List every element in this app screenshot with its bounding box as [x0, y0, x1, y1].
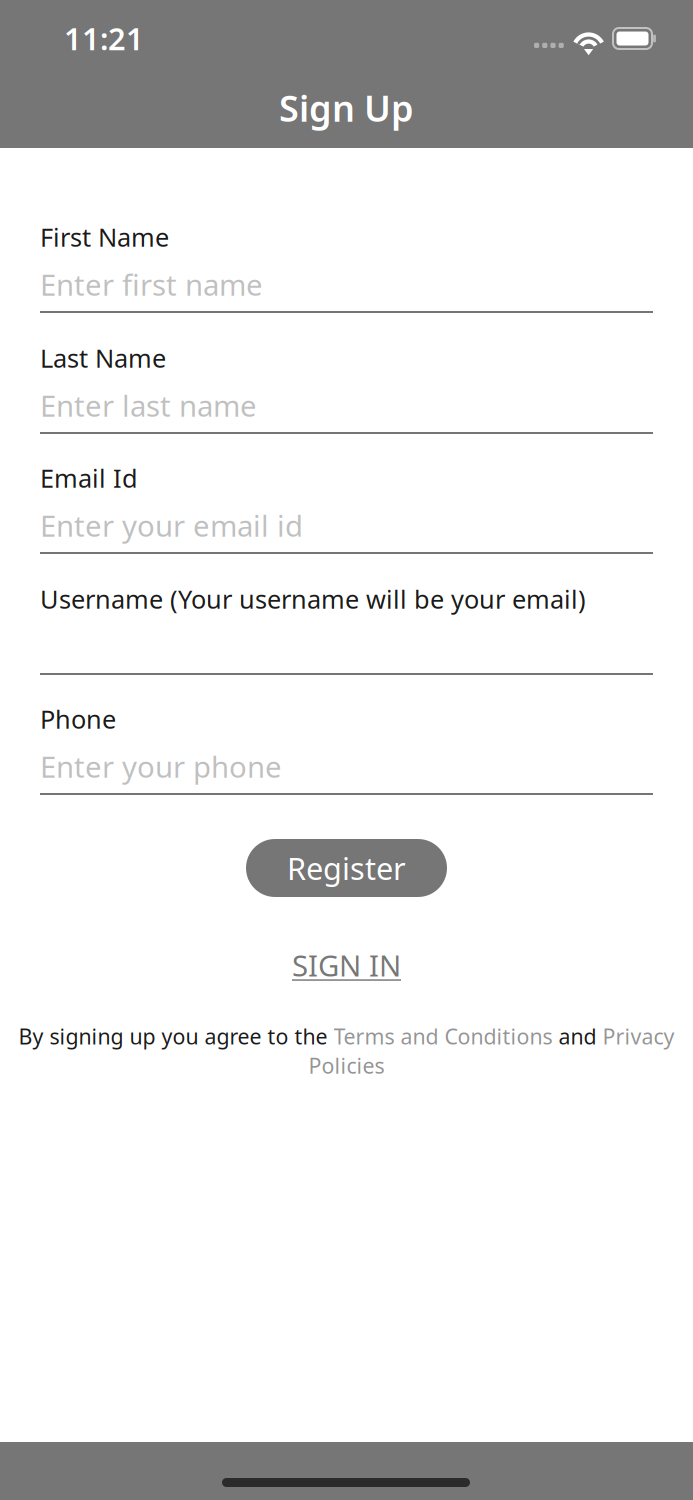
staticText: SIGN IN	[292, 945, 401, 984]
staticText: Enter first name	[40, 265, 263, 304]
staticText: By signing up you agree to the	[18, 1022, 333, 1050]
button[interactable]: Username (Your username will be your ema…	[40, 582, 653, 682]
button[interactable]: Email Id	[40, 461, 653, 561]
staticText: Last Name	[40, 341, 166, 375]
staticText: Username (Your username will be your ema…	[40, 582, 586, 616]
staticText: Privacy	[602, 1022, 674, 1050]
staticText: Terms and Conditions	[333, 1022, 552, 1050]
staticText: Phone	[40, 702, 116, 736]
staticText: Enter last name	[40, 386, 257, 425]
staticText: 11:21	[64, 18, 144, 59]
staticText: Email Id	[40, 461, 138, 495]
staticText: Register	[287, 848, 406, 888]
button[interactable]: SIGN IN	[0, 944, 693, 986]
button[interactable]: Policies	[308, 1051, 384, 1080]
button[interactable]: Register	[246, 839, 447, 897]
staticText: First Name	[40, 220, 169, 254]
button[interactable]: Privacy	[602, 1022, 674, 1050]
button[interactable]: First Name	[40, 220, 653, 320]
button[interactable]: Phone	[40, 702, 653, 802]
staticText: Sign Up	[279, 84, 414, 132]
staticText: Enter your email id	[40, 506, 303, 545]
button[interactable]: Terms and Conditions	[333, 1022, 552, 1050]
staticText: Policies	[308, 1051, 384, 1080]
staticText: and	[552, 1022, 602, 1050]
button[interactable]: Last Name	[40, 341, 653, 441]
staticText: Enter your phone	[40, 747, 282, 786]
